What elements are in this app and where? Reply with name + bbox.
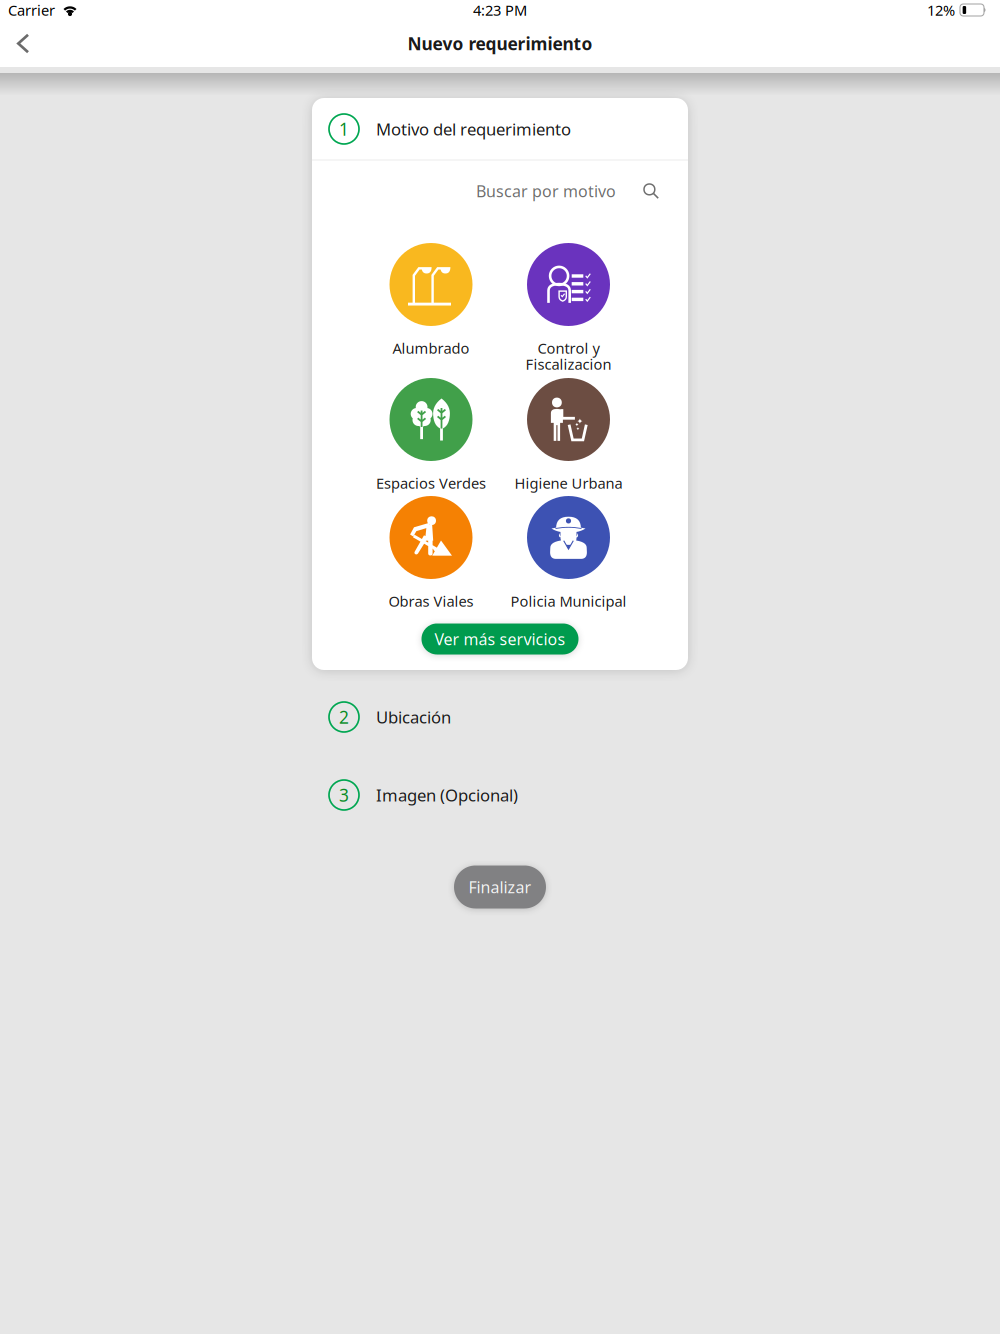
staticText: 3 xyxy=(339,783,349,807)
button[interactable]: 1 xyxy=(312,98,688,160)
staticText: 4:23 PM xyxy=(473,0,527,20)
button[interactable]: 3 xyxy=(312,773,688,817)
staticText: Obras Viales xyxy=(388,591,473,611)
staticText: Motivo del requerimiento xyxy=(376,118,571,140)
staticText: 2 xyxy=(339,705,349,729)
button[interactable]: Finalizar xyxy=(454,865,546,908)
staticText: Policia Municipal xyxy=(510,591,626,611)
button[interactable]: Policia Municipal xyxy=(496,496,640,628)
staticText: Buscar por motivo xyxy=(476,180,616,202)
staticText: Carrier xyxy=(8,0,55,20)
button[interactable]: Higiene Urbana xyxy=(496,378,640,510)
button[interactable]: 2 xyxy=(312,695,688,739)
staticText: Higiene Urbana xyxy=(514,473,622,493)
staticText: Finalizar xyxy=(468,876,531,898)
staticText: 1 xyxy=(339,117,349,141)
button[interactable]: Back xyxy=(1,21,45,65)
staticText: Nuevo requerimiento xyxy=(407,32,592,55)
staticText: Control y xyxy=(537,338,599,358)
button[interactable]: Espacios Verdes xyxy=(359,378,503,510)
button[interactable]: Alumbrado xyxy=(359,243,503,375)
staticText: 12% xyxy=(927,0,955,20)
button[interactable]: Control y xyxy=(496,243,640,375)
staticText: Ver más servicios xyxy=(434,628,565,650)
staticText: Imagen (Opcional) xyxy=(376,784,518,806)
button[interactable]: Obras Viales xyxy=(359,496,503,628)
staticText: Alumbrado xyxy=(392,338,469,358)
button[interactable]: Ver más servicios xyxy=(421,623,578,654)
staticText: Fiscalizacion xyxy=(525,354,611,374)
staticText: Ubicación xyxy=(376,706,451,728)
staticText: Espacios Verdes xyxy=(376,473,486,493)
